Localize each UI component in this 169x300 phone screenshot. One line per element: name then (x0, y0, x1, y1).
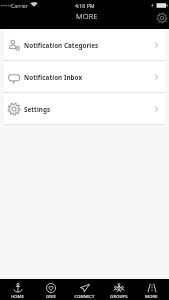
staticText: MORE (145, 294, 158, 299)
staticText: 4:16 PM (75, 2, 95, 9)
button[interactable]: Settings (4, 93, 165, 125)
button[interactable]: GIVE (34, 280, 67, 299)
staticText: HOME (11, 294, 24, 299)
button[interactable]: CONNECT (68, 280, 101, 299)
staticText: GIVE (46, 294, 56, 299)
button[interactable]: MORE (135, 280, 168, 299)
staticText: Notification Categories (24, 41, 99, 50)
button[interactable]: Notification Inbox (4, 61, 165, 93)
button[interactable]: HOME (1, 280, 34, 299)
staticText: Carrier (11, 2, 28, 9)
staticText: Notification Inbox (24, 73, 83, 82)
staticText: CONNECT (74, 294, 95, 299)
staticText: Settings (24, 105, 51, 114)
staticText: MORE (76, 11, 98, 21)
button[interactable]: Settings (155, 11, 169, 25)
staticText: GROUPS (110, 294, 128, 299)
button[interactable]: Notification Categories (4, 29, 165, 61)
button[interactable]: GROUPS (102, 280, 135, 299)
